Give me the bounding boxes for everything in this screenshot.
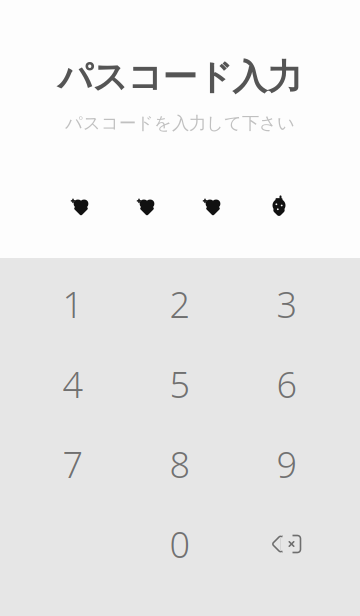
button[interactable]: Delete: [233, 504, 340, 584]
staticText: 1: [62, 280, 83, 328]
staticText: 5: [169, 360, 190, 408]
button[interactable]: 6: [233, 344, 340, 424]
button[interactable]: 2: [126, 264, 233, 344]
staticText: 6: [276, 360, 297, 408]
button[interactable]: 9: [233, 424, 340, 504]
button[interactable]: 4: [19, 344, 126, 424]
button[interactable]: 1: [19, 264, 126, 344]
button[interactable]: 5: [126, 344, 233, 424]
staticText: 7: [62, 440, 83, 488]
staticText: パスコードを入力して下さい: [65, 113, 295, 134]
staticText: 8: [169, 440, 190, 488]
staticText: 3: [276, 280, 297, 328]
staticText: パスコード入力: [57, 56, 302, 99]
staticText: 0: [169, 520, 190, 568]
button[interactable]: 0: [126, 504, 233, 584]
staticText: 2: [169, 280, 190, 328]
button[interactable]: 8: [126, 424, 233, 504]
button[interactable]: 7: [19, 424, 126, 504]
button[interactable]: 3: [233, 264, 340, 344]
staticText: 9: [276, 440, 297, 488]
staticText: 4: [62, 360, 83, 408]
